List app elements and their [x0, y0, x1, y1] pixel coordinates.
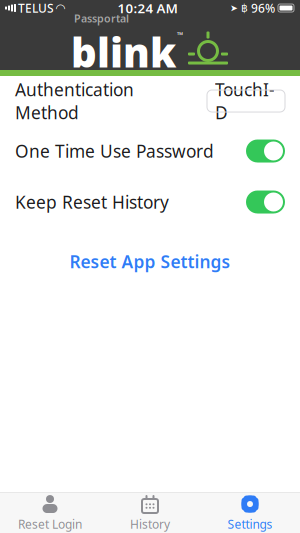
button[interactable]: One Time Use Password	[0, 126, 300, 176]
staticText: ➤	[230, 3, 238, 13]
staticText: 10:24 AM	[117, 0, 177, 17]
staticText: TELUS	[18, 0, 54, 16]
staticText: Authentication Method	[15, 78, 134, 124]
staticText: TouchID	[215, 78, 275, 124]
staticText: One Time Use Password	[15, 139, 214, 162]
staticText: ™	[177, 29, 183, 40]
staticText: ฿	[241, 2, 248, 14]
button[interactable]: Settings	[200, 493, 300, 533]
staticText: Settings	[227, 516, 272, 532]
staticText: Passportal	[74, 11, 129, 26]
button[interactable]: Reset Login	[0, 493, 100, 533]
staticText: blink	[71, 25, 176, 79]
staticText: 96%	[251, 0, 275, 16]
button[interactable]: TouchID	[207, 90, 285, 112]
staticText: Reset App Settings	[69, 250, 230, 273]
staticText: ◠	[56, 1, 65, 15]
staticText: History	[130, 516, 170, 532]
staticText: Reset Login	[18, 516, 82, 532]
button[interactable]: History	[100, 493, 200, 533]
button[interactable]: Reset App Settings	[0, 240, 300, 283]
button[interactable]: Keep Reset History	[0, 176, 300, 228]
staticText: Keep Reset History	[15, 190, 169, 213]
